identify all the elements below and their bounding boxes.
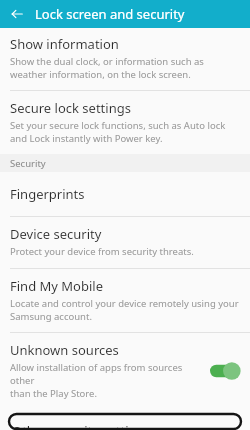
staticText: Locate and control your device remotely … — [10, 297, 239, 323]
button[interactable]: Unknown sources — [0, 333, 250, 409]
staticText: Protect your device from security threat… — [10, 245, 194, 258]
button[interactable]: Device security — [0, 217, 250, 268]
staticText: Fingerprints — [10, 185, 85, 203]
button[interactable]: Find My Mobile — [0, 269, 250, 332]
staticText: Show information — [10, 35, 119, 53]
staticText: Device security — [10, 225, 102, 243]
staticText: Secure lock settings — [10, 99, 131, 117]
staticText: Security — [10, 157, 46, 170]
staticText: Other security settings — [12, 422, 151, 430]
staticText: Find My Mobile — [10, 277, 104, 295]
staticText: Allow installation of apps from sources … — [10, 361, 202, 400]
button[interactable]: Back — [7, 4, 27, 24]
staticText: Set your secure lock functions, such as … — [10, 119, 226, 145]
staticText: Lock screen and security — [35, 5, 185, 23]
staticText: Unknown sources — [10, 341, 119, 359]
button[interactable]: Other security settings — [8, 413, 242, 430]
button[interactable]: Show information — [0, 28, 250, 90]
button[interactable]: Secure lock settings — [0, 91, 250, 154]
button[interactable]: Fingerprints — [0, 172, 250, 216]
button[interactable]: Unknown sources toggle — [208, 361, 242, 381]
staticText: Show the dual clock, or information such… — [10, 55, 204, 81]
